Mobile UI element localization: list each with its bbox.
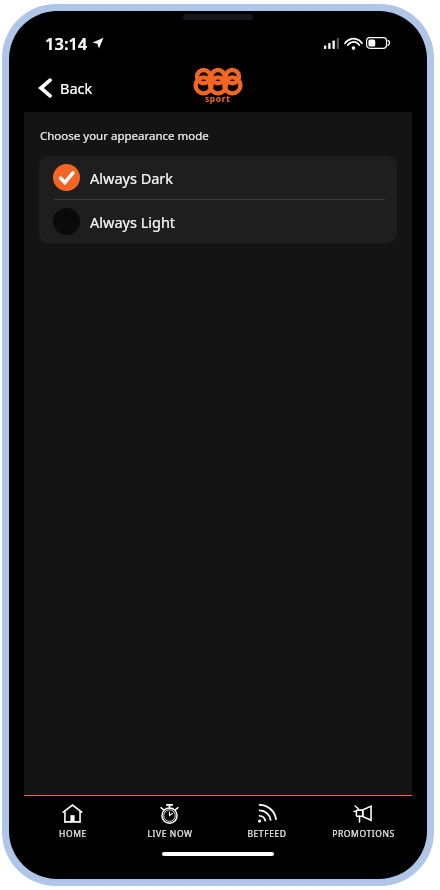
staticText: BETFEED (247, 828, 287, 840)
staticText: Always Light (90, 212, 176, 232)
button[interactable]: Always Light (39, 200, 397, 243)
button[interactable]: Always Dark (39, 156, 397, 199)
button[interactable]: PROMOTIONS (315, 796, 412, 846)
button[interactable]: HOME (24, 796, 121, 846)
staticText: HOME (59, 828, 87, 840)
button[interactable]: LIVE NOW (121, 796, 218, 846)
button[interactable]: BETFEED (218, 796, 315, 846)
staticText: LIVE NOW (147, 828, 193, 840)
staticText: Choose your appearance mode (40, 128, 209, 144)
staticText: sport (205, 93, 231, 105)
staticText: 13:14 (45, 32, 88, 54)
staticText: PROMOTIONS (332, 828, 395, 840)
staticText: Always Dark (90, 168, 174, 188)
button[interactable]: Back (24, 70, 103, 106)
staticText: Back (60, 78, 93, 98)
